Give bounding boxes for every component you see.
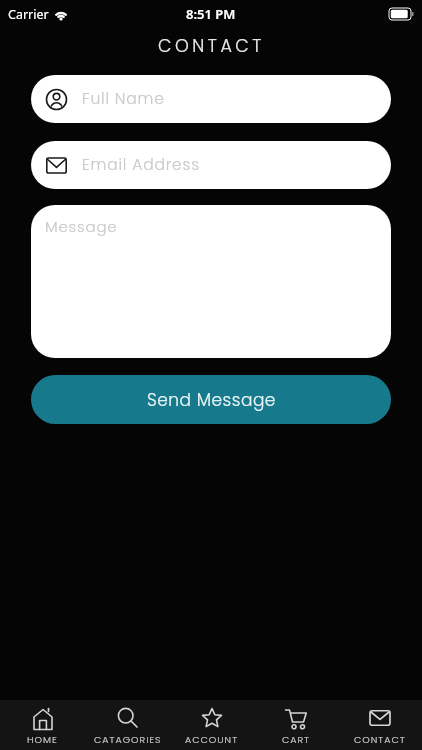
button[interactable]: Message bbox=[31, 205, 391, 358]
staticText: Message bbox=[45, 216, 118, 237]
button[interactable]: Send Message bbox=[31, 375, 391, 424]
staticText: Full Name bbox=[82, 88, 165, 110]
staticText: HOME bbox=[27, 733, 58, 746]
staticText: Carrier bbox=[8, 6, 49, 23]
button[interactable]: HOME bbox=[0, 700, 85, 750]
staticText: CONTACT bbox=[158, 34, 265, 59]
button[interactable]: CONTACT bbox=[338, 700, 422, 750]
staticText: CATAGORIES bbox=[94, 733, 162, 746]
staticText: CONTACT bbox=[354, 733, 406, 746]
button[interactable]: CATAGORIES bbox=[85, 700, 170, 750]
staticText: Email Address bbox=[82, 154, 200, 176]
button[interactable]: ACCOUNT bbox=[170, 700, 254, 750]
staticText: CART bbox=[282, 733, 311, 746]
staticText: 8:51 PM bbox=[186, 5, 236, 23]
button[interactable]: CART bbox=[254, 700, 338, 750]
staticText: Send Message bbox=[147, 388, 276, 412]
staticText: ACCOUNT bbox=[185, 733, 239, 746]
button[interactable]: Full Name bbox=[31, 75, 391, 123]
button[interactable]: Email Address bbox=[31, 141, 391, 189]
